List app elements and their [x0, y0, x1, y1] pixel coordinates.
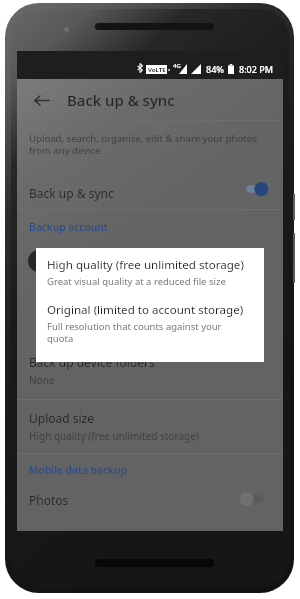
staticText: Upload size [29, 410, 94, 426]
staticText: Great visual quality at a reduced file s… [47, 275, 226, 288]
button[interactable]: Back [26, 85, 56, 115]
staticText: Back up & sync [67, 90, 175, 110]
button[interactable]: High quality (free unlimited storage) [47, 257, 253, 288]
button[interactable]: Upload size [17, 407, 283, 455]
button[interactable]: Back up device folders [17, 351, 283, 399]
button[interactable]: Mobile data backup [29, 463, 127, 477]
staticText: 4G [173, 62, 181, 70]
button[interactable]: Backup account [29, 220, 108, 234]
staticText: None [29, 373, 55, 387]
button[interactable]: Photos [17, 482, 283, 515]
staticText: 8:02 PM [239, 63, 273, 75]
staticText: Upload, search, organise, edit & share y… [29, 132, 258, 157]
staticText: Back up device folders [29, 354, 155, 370]
staticText: VoLTE [148, 66, 166, 74]
staticText: 84% [206, 63, 224, 75]
staticText: High quality (free unlimited storage) [29, 429, 199, 443]
button[interactable]: Back up & sync [17, 172, 283, 205]
staticText: Full resolution that counts against your… [47, 320, 222, 345]
staticText: High quality (free unlimited storage) [47, 257, 244, 273]
staticText: Photos [29, 492, 69, 508]
staticText: Back up & sync [29, 185, 114, 201]
staticText: Original (limited to account storage) [47, 302, 244, 318]
button[interactable]: Original (limited to account storage) [47, 302, 253, 345]
